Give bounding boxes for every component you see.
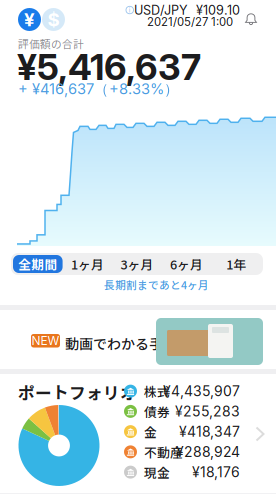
staticText: 長期割まであと4ヶ月 — [104, 277, 209, 292]
staticText: 1年 — [226, 255, 246, 273]
staticText: 3ヶ月 — [120, 255, 153, 273]
staticText: 金 — [144, 422, 157, 441]
staticText: ¥288,924 — [176, 443, 240, 460]
button[interactable]: 6ヶ月 — [162, 255, 211, 273]
staticText: 6ヶ月 — [170, 255, 203, 273]
staticText: 1ヶ月 — [71, 255, 104, 273]
staticText: 全期間 — [18, 255, 57, 273]
staticText: ¥18,176 — [192, 464, 240, 481]
staticText: $ — [47, 8, 59, 31]
button[interactable]: 1ヶ月 — [63, 255, 112, 273]
staticText: 株式 — [144, 382, 170, 400]
staticText: USD/JPY ¥109.10 — [134, 2, 240, 18]
staticText: NEW — [31, 333, 59, 348]
button[interactable]: US dollar — [42, 8, 65, 31]
staticText: + ¥416,637（+8.33%） — [18, 80, 179, 99]
staticText: ポートフォリオ — [18, 380, 137, 404]
staticText: 2021/05/27 1:00 — [147, 15, 233, 29]
staticText: ¥ — [24, 8, 35, 31]
button[interactable]: Japanese yen — [18, 8, 41, 31]
staticText: 現金 — [144, 463, 170, 481]
staticText: i — [129, 6, 131, 14]
button[interactable]: 全期間 — [13, 255, 63, 273]
staticText: ¥5,416,637 — [17, 45, 201, 89]
button[interactable]: Show portfolio details — [249, 420, 271, 448]
button[interactable]: 3ヶ月 — [112, 255, 162, 273]
staticText: 動画でわかる手数料 — [65, 333, 191, 353]
staticText: 評価額の合計 — [18, 36, 84, 51]
button[interactable]: 1年 — [211, 255, 261, 273]
button[interactable]: Notifications — [238, 6, 264, 32]
staticText: 債券 — [144, 402, 170, 420]
staticText: 不動産 — [144, 443, 183, 461]
staticText: ¥255,283 — [175, 403, 240, 420]
staticText: ¥418,347 — [179, 423, 240, 440]
staticText: ¥4,435,907 — [163, 383, 240, 400]
button[interactable]: NEW — [0, 310, 276, 369]
